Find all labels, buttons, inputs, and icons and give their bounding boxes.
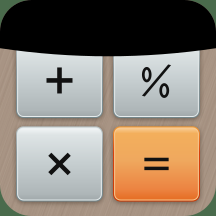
button[interactable]: Multiply <box>16 126 103 202</box>
button[interactable]: Percent <box>113 43 200 118</box>
button[interactable]: Add <box>16 43 103 118</box>
button[interactable]: Equals <box>113 126 200 202</box>
